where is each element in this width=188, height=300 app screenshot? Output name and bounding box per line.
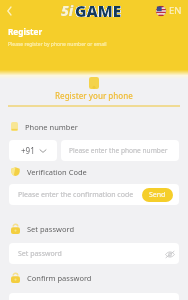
staticText: EN	[169, 4, 182, 17]
staticText: Set password	[18, 249, 62, 259]
staticText: GAME	[75, 0, 122, 21]
button[interactable]: Please enter the phone number	[61, 140, 179, 161]
staticText: Set password	[27, 224, 75, 234]
button[interactable]: EN	[156, 4, 182, 17]
staticText: GAME	[75, 0, 122, 21]
staticText: 5i	[61, 2, 74, 20]
button[interactable]: Set password	[9, 243, 179, 264]
staticText: 5i	[61, 2, 74, 20]
button[interactable]: Send	[142, 188, 173, 202]
staticText: GAME	[75, 0, 122, 21]
staticText: 5i	[61, 2, 74, 20]
staticText: Phone number	[25, 122, 78, 132]
staticText: 5i	[61, 2, 74, 20]
staticText: 5i	[61, 2, 74, 20]
staticText: Register your phone	[55, 90, 133, 101]
button[interactable]: Please enter the confirmation code	[9, 184, 179, 205]
staticText: GAME	[75, 0, 122, 21]
staticText: GAME	[75, 0, 122, 21]
staticText: GAME	[75, 0, 122, 21]
staticText: Confirm password	[27, 273, 92, 283]
staticText: Register	[8, 26, 43, 37]
staticText: Send	[149, 190, 166, 200]
staticText: 5i	[61, 2, 74, 20]
button[interactable]: Back	[1, 3, 17, 19]
button[interactable]: Show password	[164, 248, 176, 260]
staticText: 5i	[61, 2, 74, 20]
staticText: GAME	[75, 0, 122, 21]
staticText: Please enter the confirmation code	[18, 190, 134, 200]
staticText: 5i	[61, 2, 74, 20]
staticText: 5i	[61, 2, 74, 20]
staticText: +91	[21, 145, 35, 156]
staticText: GAME	[75, 0, 122, 21]
button[interactable]: +91	[9, 140, 57, 161]
staticText: GAME	[75, 0, 122, 21]
staticText: Please enter the phone number	[69, 146, 168, 155]
button[interactable]: Register your phone	[50, 89, 138, 102]
staticText: Verification Code	[27, 167, 87, 177]
staticText: Please register by phone number or email	[8, 41, 107, 48]
